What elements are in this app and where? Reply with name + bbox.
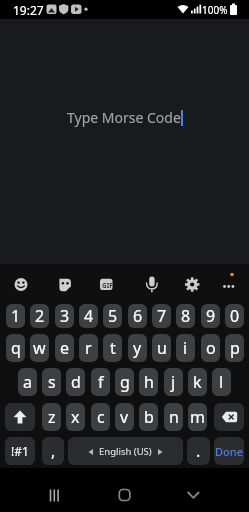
button[interactable]: o [201, 334, 220, 362]
staticText: 8 [181, 305, 191, 327]
button[interactable] [104, 475, 144, 505]
button[interactable]: v [115, 403, 134, 431]
button[interactable]: z [42, 403, 61, 431]
staticText: o [206, 337, 216, 359]
button[interactable]: u [152, 334, 171, 362]
button[interactable]: l [212, 368, 231, 396]
staticText: 19:27 [13, 2, 44, 18]
button[interactable]: r [79, 334, 98, 362]
staticText: q [11, 337, 21, 359]
button[interactable]: s [42, 368, 61, 396]
button[interactable]: !#1 [5, 437, 35, 465]
button[interactable] [214, 403, 244, 431]
button[interactable]: k [188, 368, 207, 396]
button[interactable]: 2 [30, 304, 49, 328]
staticText: 6 [133, 305, 143, 327]
button[interactable]: . [187, 437, 210, 465]
button[interactable]: j [164, 368, 183, 396]
staticText: u [157, 337, 167, 359]
button[interactable]: t [103, 334, 122, 362]
staticText: 4 [84, 305, 94, 327]
button[interactable]: 0 [225, 304, 244, 328]
button[interactable]: f [91, 368, 110, 396]
staticText: 7 [157, 305, 167, 327]
staticText: d [71, 371, 81, 393]
staticText: GIF [102, 281, 113, 290]
staticText: , [51, 440, 56, 462]
button[interactable]: n [164, 403, 183, 431]
button[interactable]: d [66, 368, 85, 396]
button[interactable]: q [6, 334, 25, 362]
staticText: w [33, 337, 46, 359]
staticText: t [110, 337, 116, 359]
button[interactable] [5, 403, 35, 431]
staticText: c [97, 406, 105, 428]
button[interactable]: c [91, 403, 110, 431]
button[interactable]: w [30, 334, 49, 362]
button[interactable]: b [139, 403, 158, 431]
staticText: s [48, 371, 56, 393]
staticText: z [48, 406, 56, 428]
button[interactable]: 9 [201, 304, 220, 328]
staticText: Done [215, 444, 243, 459]
button[interactable]: 6 [128, 304, 147, 328]
staticText: r [85, 337, 92, 359]
staticText: English (US) [99, 445, 152, 458]
staticText: 5 [108, 305, 118, 327]
staticText: 3 [60, 305, 70, 327]
button[interactable]: 4 [79, 304, 98, 328]
staticText: 2 [35, 305, 45, 327]
button[interactable]: g [115, 368, 134, 396]
staticText: 9 [206, 305, 216, 327]
staticText: x [71, 406, 80, 428]
staticText: n [169, 406, 179, 428]
button[interactable]: English (US) [68, 437, 183, 465]
staticText: h [144, 371, 154, 393]
button[interactable]: 3 [55, 304, 74, 328]
button[interactable]: e [55, 334, 74, 362]
staticText: 100% [202, 3, 228, 17]
staticText: g [120, 371, 130, 393]
staticText: y [133, 337, 142, 359]
button[interactable]: h [139, 368, 158, 396]
staticText: p [230, 337, 240, 359]
button[interactable]: p [225, 334, 244, 362]
staticText: f [98, 371, 104, 393]
staticText: e [60, 337, 70, 359]
staticText: 0 [230, 305, 240, 327]
staticText: m [190, 406, 205, 428]
staticText: k [193, 371, 202, 393]
staticText: i [183, 337, 188, 359]
staticText: j [171, 371, 176, 393]
staticText: v [120, 406, 129, 428]
button[interactable]: y [128, 334, 147, 362]
button[interactable] [0, 264, 249, 304]
staticText: Type Morse Code [67, 108, 181, 127]
button[interactable]: 7 [152, 304, 171, 328]
button[interactable]: 8 [176, 304, 195, 328]
button[interactable]: Done [214, 437, 244, 465]
staticText: l [219, 371, 224, 393]
button[interactable] [179, 475, 219, 505]
button[interactable]: x [66, 403, 85, 431]
staticText: !#1 [11, 443, 29, 459]
button[interactable]: a [18, 368, 37, 396]
staticText: a [23, 371, 32, 393]
button[interactable]: 5 [103, 304, 122, 328]
staticText: . [196, 440, 201, 462]
button[interactable]: i [176, 334, 195, 362]
staticText: 1 [11, 305, 21, 327]
button[interactable]: 1 [6, 304, 25, 328]
button[interactable]: , [42, 437, 64, 465]
button[interactable]: m [188, 403, 207, 431]
button[interactable] [30, 475, 70, 505]
staticText: b [144, 406, 154, 428]
